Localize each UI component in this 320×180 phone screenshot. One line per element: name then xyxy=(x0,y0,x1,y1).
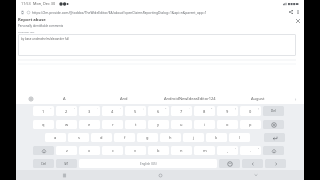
button[interactable]: p xyxy=(240,120,261,129)
staticText: x xyxy=(88,148,91,153)
button[interactable]: d xyxy=(91,133,112,142)
button[interactable]: Next xyxy=(265,159,286,168)
button[interactable]: More options xyxy=(294,8,301,15)
button[interactable]: AndroidNewIdeasEditor124 xyxy=(153,93,226,104)
button[interactable]: . xyxy=(240,146,261,155)
button[interactable]: 8 xyxy=(194,106,215,116)
staticText: q xyxy=(42,122,45,127)
staticText: s xyxy=(78,135,80,140)
button[interactable]: e xyxy=(79,120,100,129)
staticText: k xyxy=(215,135,218,140)
staticText: ~ xyxy=(50,107,52,110)
button[interactable]: t xyxy=(125,120,146,129)
button[interactable]: h xyxy=(160,133,181,142)
staticText: 1 xyxy=(42,109,45,114)
staticText: 4 xyxy=(111,109,114,114)
button[interactable]: A xyxy=(35,93,94,104)
staticText: p xyxy=(249,122,252,127)
button[interactable]: SHIFT xyxy=(33,146,54,155)
button[interactable]: SHIFT xyxy=(263,146,284,155)
staticText: g xyxy=(146,135,149,140)
button[interactable]: r xyxy=(102,120,123,129)
button[interactable]: b xyxy=(148,146,169,155)
button[interactable]: x xyxy=(79,146,100,155)
button[interactable]: Site info xyxy=(25,9,31,15)
staticText: AndroidNewIdeasEditor124 xyxy=(164,96,216,101)
staticText: 8 xyxy=(203,109,206,114)
button[interactable]: k xyxy=(206,133,227,142)
button[interactable]: Recents xyxy=(16,170,112,180)
button[interactable]: a xyxy=(45,133,66,142)
staticText: a xyxy=(54,135,57,140)
staticText: ; xyxy=(143,107,144,110)
staticText: 3 xyxy=(88,109,91,114)
button[interactable]: 0 xyxy=(240,106,261,116)
button[interactable]: m xyxy=(194,146,215,155)
button[interactable]: August xyxy=(226,93,290,104)
staticText: https://2m.proside.com/@toddox/TheWideEd… xyxy=(32,10,287,14)
button[interactable]: , xyxy=(217,146,238,155)
button[interactable]: Keyboard settings xyxy=(27,95,35,103)
button[interactable]: Home xyxy=(112,170,208,180)
button[interactable]: j xyxy=(183,133,204,142)
staticText: August xyxy=(251,96,265,101)
staticText: h xyxy=(169,135,172,140)
button[interactable]: Emoji xyxy=(219,159,240,168)
staticText: b xyxy=(157,148,160,153)
button[interactable]: q xyxy=(33,120,54,129)
staticText: u xyxy=(180,122,183,127)
staticText: 6 xyxy=(157,109,160,114)
button[interactable]: 3 xyxy=(79,106,100,116)
button[interactable]: w xyxy=(56,120,77,129)
staticText: - xyxy=(189,107,190,110)
staticText: 11:53 xyxy=(21,1,31,6)
staticText: n xyxy=(180,148,183,153)
button[interactable]: BKSP xyxy=(263,120,284,129)
button[interactable]: Share xyxy=(287,8,294,15)
button[interactable]: v xyxy=(125,146,146,155)
button[interactable]: s xyxy=(68,133,89,142)
button[interactable]: y xyxy=(148,120,169,129)
button[interactable]: f xyxy=(114,133,135,142)
staticText: ( xyxy=(235,107,236,110)
button[interactable]: English (US) xyxy=(79,159,217,168)
staticText: by base underwhelm/alexander full xyxy=(21,37,70,41)
button[interactable]: 6 xyxy=(148,106,169,116)
button[interactable]: Tabs xyxy=(19,9,25,15)
staticText: * xyxy=(211,107,213,110)
button[interactable]: z xyxy=(56,146,77,155)
staticText: . xyxy=(250,148,252,153)
button[interactable]: o xyxy=(217,120,238,129)
button[interactable]: 4 xyxy=(102,106,123,116)
button[interactable]: u xyxy=(171,120,192,129)
staticText: A xyxy=(63,96,66,101)
button[interactable]: Previous xyxy=(242,159,263,168)
staticText: English (US) xyxy=(140,162,157,166)
button[interactable]: Del xyxy=(263,106,284,116)
button[interactable]: 7 xyxy=(171,106,192,116)
staticText: Comment Text xyxy=(18,30,35,33)
button[interactable]: Ctrl xyxy=(33,159,54,168)
staticText: z xyxy=(66,148,68,153)
button[interactable]: n xyxy=(171,146,192,155)
button[interactable]: And xyxy=(94,93,153,104)
staticText: Mon, Dec 30 xyxy=(33,1,56,6)
button[interactable]: 9 xyxy=(217,106,238,116)
button[interactable]: 5 xyxy=(125,106,146,116)
button[interactable]: Close dialog xyxy=(293,16,303,26)
staticText: d xyxy=(100,135,103,140)
button[interactable]: More suggestions xyxy=(290,94,300,104)
staticText: y xyxy=(157,122,160,127)
button[interactable]: !#1 xyxy=(56,159,77,168)
button[interactable]: g xyxy=(137,133,158,142)
button[interactable]: l xyxy=(229,133,250,142)
button[interactable]: 2 xyxy=(56,106,77,116)
button[interactable]: i xyxy=(194,120,215,129)
staticText: 5 xyxy=(134,109,137,114)
button[interactable]: ENTER xyxy=(264,133,285,142)
staticText: c xyxy=(112,148,114,153)
staticText: ' xyxy=(97,107,98,110)
button[interactable]: 1 xyxy=(33,106,54,116)
button[interactable]: c xyxy=(102,146,123,155)
